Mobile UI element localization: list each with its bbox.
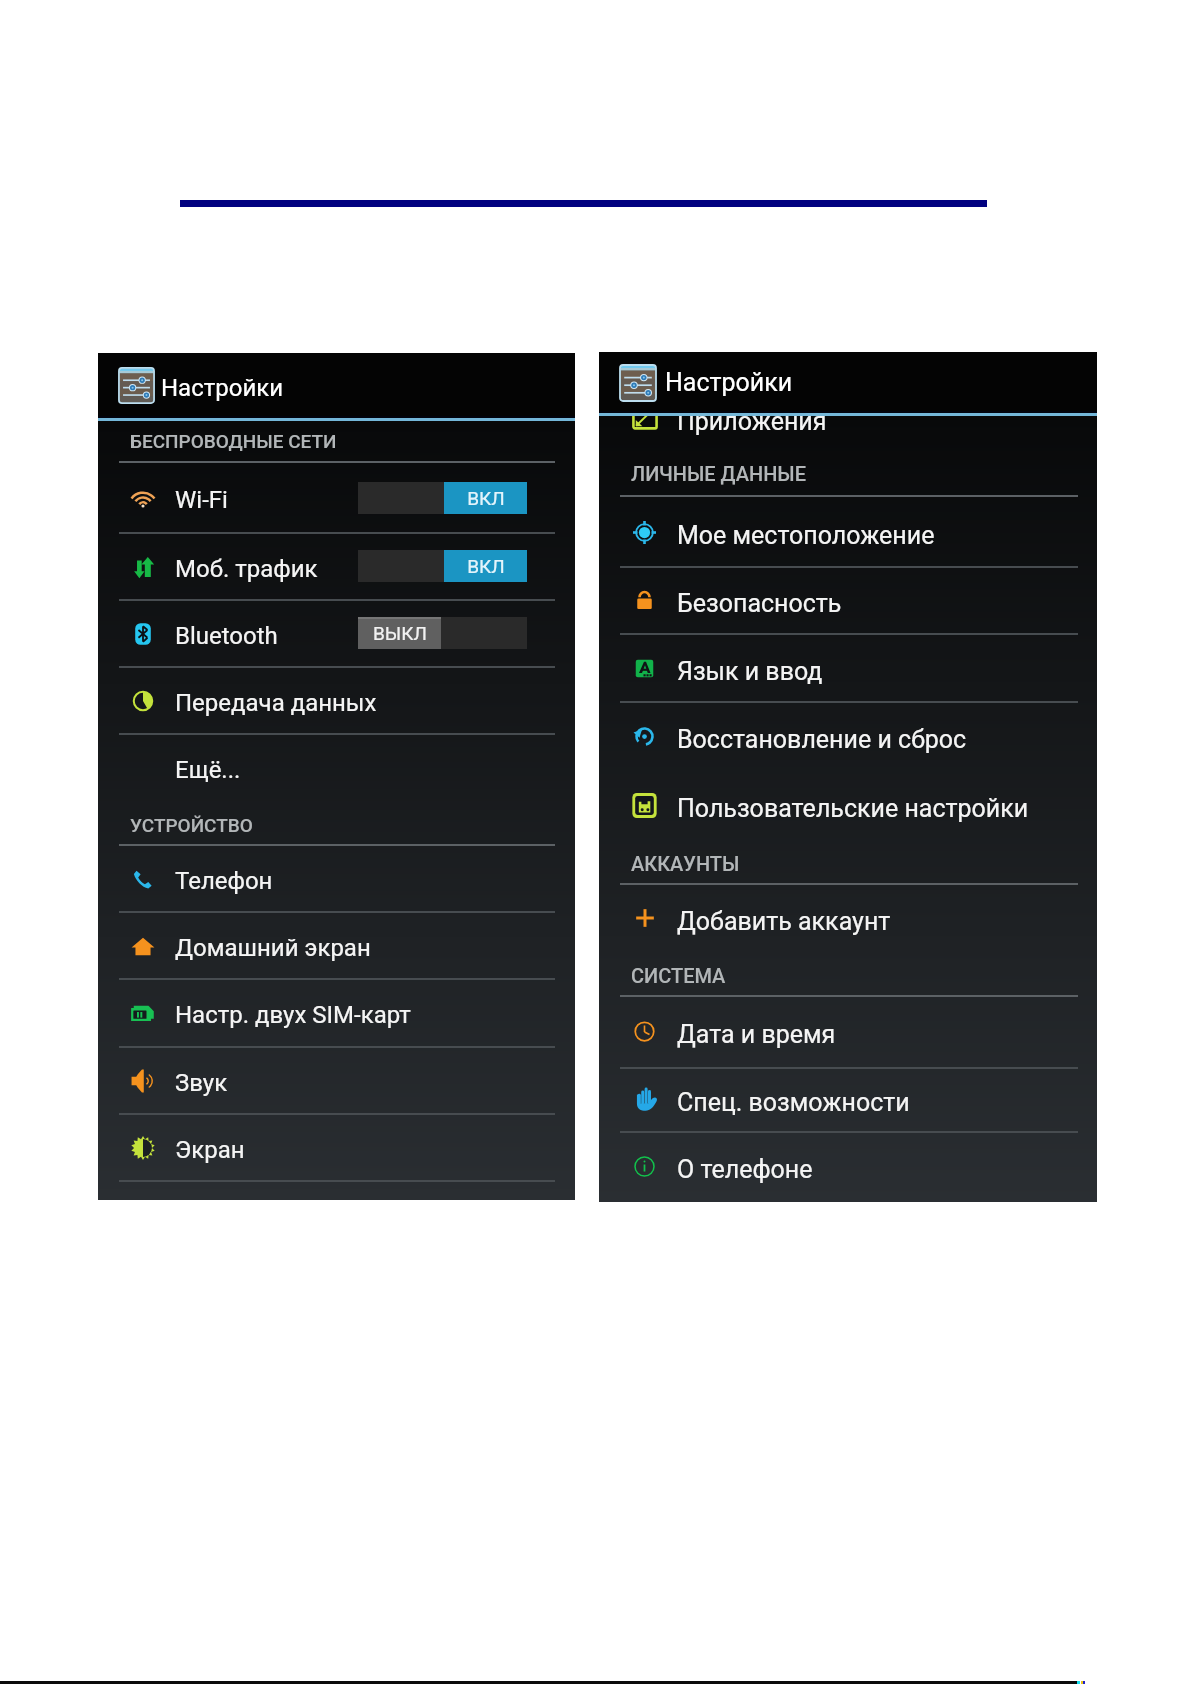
staticText: Телефон bbox=[175, 867, 273, 895]
button[interactable]: Bluetooth bbox=[98, 600, 575, 667]
staticText: СИСТЕМА bbox=[631, 964, 726, 987]
button[interactable]: Мое местоположение bbox=[599, 497, 1097, 567]
staticText: ВКЛ bbox=[467, 487, 505, 509]
button[interactable]: Экран bbox=[98, 1114, 575, 1181]
staticText: Передача данных bbox=[175, 689, 377, 717]
button[interactable]: Домашний экран bbox=[98, 912, 575, 979]
button[interactable]: Настр. двух SIM-карт bbox=[98, 979, 575, 1047]
staticText: Спец. возможности bbox=[677, 1088, 910, 1117]
button[interactable]: Моб. трафик bbox=[98, 533, 575, 601]
button[interactable]: Пользовательские настройки bbox=[599, 771, 1097, 839]
button[interactable]: Звук bbox=[98, 1047, 575, 1114]
staticText: Дата и время bbox=[677, 1020, 836, 1049]
staticText: Ещё... bbox=[175, 756, 241, 784]
staticText: Мое местоположение bbox=[677, 521, 935, 550]
staticText: Звук bbox=[175, 1069, 228, 1097]
button[interactable]: О телефоне bbox=[599, 1132, 1097, 1200]
button[interactable]: Восстановление и сброс bbox=[599, 702, 1097, 771]
button[interactable]: Добавить аккаунт bbox=[599, 884, 1097, 952]
staticText: Язык и ввод bbox=[677, 657, 823, 686]
button[interactable]: Безопасность bbox=[599, 566, 1097, 634]
staticText: ВКЛ bbox=[467, 555, 505, 577]
button[interactable]: Язык и ввод bbox=[599, 634, 1097, 702]
staticText: Домашний экран bbox=[175, 934, 371, 962]
staticText: Моб. трафик bbox=[175, 555, 318, 583]
button[interactable]: Спец. возможности bbox=[599, 1067, 1097, 1131]
button[interactable]: Телефон bbox=[98, 845, 575, 912]
button[interactable]: Настройки bbox=[98, 353, 575, 418]
staticText: Экран bbox=[175, 1136, 245, 1164]
staticText: ЛИЧНЫЕ ДАННЫЕ bbox=[631, 462, 806, 485]
staticText: Настройки bbox=[665, 368, 793, 397]
staticText: Безопасность bbox=[677, 589, 842, 618]
other: Настройки bbox=[117, 366, 156, 405]
staticText: УСТРОЙСТВО bbox=[130, 814, 253, 836]
button[interactable]: Включено bbox=[358, 482, 527, 514]
button[interactable]: Ещё... bbox=[98, 734, 575, 801]
staticText: Добавить аккаунт bbox=[677, 907, 891, 936]
button[interactable]: Передача данных bbox=[98, 667, 575, 734]
button[interactable]: Выключено bbox=[358, 617, 527, 649]
staticText: Пользовательские настройки bbox=[677, 794, 1029, 823]
other: Настройки bbox=[618, 363, 658, 403]
staticText: ВЫКЛ bbox=[373, 622, 427, 644]
staticText: Настройки bbox=[161, 374, 284, 402]
button[interactable]: Настройки bbox=[599, 352, 1097, 413]
staticText: АККАУНТЫ bbox=[631, 852, 740, 875]
staticText: Восстановление и сброс bbox=[677, 725, 967, 754]
staticText: Bluetooth bbox=[175, 622, 278, 650]
staticText: Приложения bbox=[677, 407, 827, 436]
button[interactable]: Приложения bbox=[599, 384, 1097, 452]
staticText: Настр. двух SIM-карт bbox=[175, 1001, 411, 1029]
button[interactable]: Включено bbox=[358, 550, 527, 582]
button[interactable]: Wi-Fi bbox=[98, 463, 575, 533]
staticText: БЕСПРОВОДНЫЕ СЕТИ bbox=[130, 430, 337, 452]
button[interactable]: Дата и время bbox=[599, 996, 1097, 1067]
staticText: Wi-Fi bbox=[175, 486, 228, 514]
staticText: О телефоне bbox=[677, 1155, 813, 1184]
